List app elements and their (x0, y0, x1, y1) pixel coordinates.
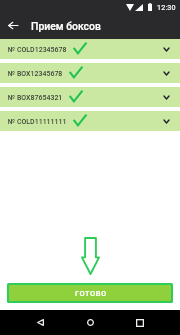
staticText: № COLD11111111 (8, 118, 67, 126)
button[interactable]: № BOX87654321 (0, 87, 180, 107)
button[interactable]: Back (20, 310, 60, 335)
button[interactable]: Back (0, 13, 26, 38)
button[interactable]: № COLD11111111 (0, 111, 180, 131)
staticText: Прием боксов (31, 20, 101, 32)
staticText: № BOX87654321 (8, 94, 63, 102)
button[interactable]: № COLD12345678 (0, 39, 180, 59)
button[interactable]: Home (70, 310, 110, 335)
button[interactable]: № BOX12345678 (0, 63, 180, 83)
button[interactable]: ГОТОВО (9, 285, 171, 301)
staticText: ГОТОВО (75, 289, 107, 298)
staticText: 12:30 (157, 3, 176, 11)
staticText: № BOX12345678 (8, 70, 63, 78)
staticText: № COLD12345678 (8, 46, 67, 54)
button[interactable]: Recent apps (120, 310, 160, 335)
